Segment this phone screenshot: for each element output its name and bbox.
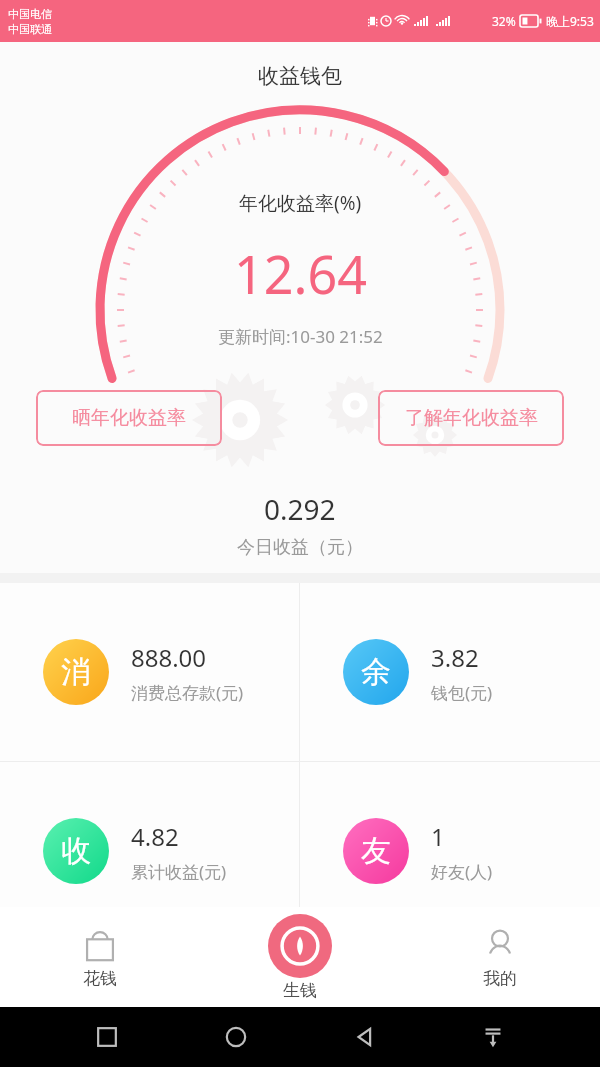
staticText: 晒年化收益率 — [72, 406, 186, 430]
staticText: 消 — [61, 653, 91, 691]
staticText: 中国联通 — [8, 22, 52, 36]
staticText: 888.00 — [131, 641, 207, 674]
staticText: 消费总存款(元) — [131, 681, 244, 704]
button[interactable]: Recents — [90, 1020, 124, 1054]
staticText: 0.292 — [264, 490, 336, 528]
staticText: 1 — [431, 820, 445, 853]
staticText: 12.64 — [234, 238, 367, 309]
staticText: 4.82 — [131, 820, 179, 853]
staticText: 我的 — [483, 968, 517, 989]
staticText: 3.82 — [431, 641, 479, 674]
button[interactable]: Hide navigation bar — [476, 1020, 510, 1054]
button[interactable]: 我的 — [400, 907, 600, 1007]
staticText: 收 — [61, 832, 91, 870]
button[interactable]: 花钱 — [0, 907, 200, 1007]
staticText: 今日收益（元） — [237, 536, 363, 559]
button[interactable]: 收 — [0, 762, 299, 940]
staticText: 好友(人) — [431, 860, 493, 883]
staticText: 花钱 — [83, 968, 117, 989]
staticText: 中国电信 — [8, 7, 52, 21]
button[interactable]: 生钱 — [200, 907, 400, 1007]
staticText: 收益钱包 — [258, 63, 342, 89]
staticText: 更新时间:10-30 21:52 — [218, 325, 383, 348]
staticText: 晚上9:53 — [546, 13, 594, 29]
staticText: 32% — [492, 13, 516, 29]
button[interactable]: 晒年化收益率 — [36, 390, 222, 446]
staticText: 余 — [361, 653, 391, 691]
button[interactable]: 了解年化收益率 — [378, 390, 564, 446]
button[interactable]: 友 — [300, 762, 600, 940]
button[interactable]: 余 — [300, 583, 600, 761]
button[interactable]: 消 — [0, 583, 299, 761]
button[interactable]: Back — [347, 1020, 381, 1054]
staticText: 生钱 — [283, 980, 317, 1001]
staticText: 累计收益(元) — [131, 860, 227, 883]
button[interactable]: Home — [219, 1020, 253, 1054]
staticText: 钱包(元) — [431, 681, 493, 704]
staticText: 年化收益率(%) — [239, 190, 362, 216]
staticText: 友 — [361, 832, 391, 870]
staticText: 了解年化收益率 — [405, 406, 538, 430]
